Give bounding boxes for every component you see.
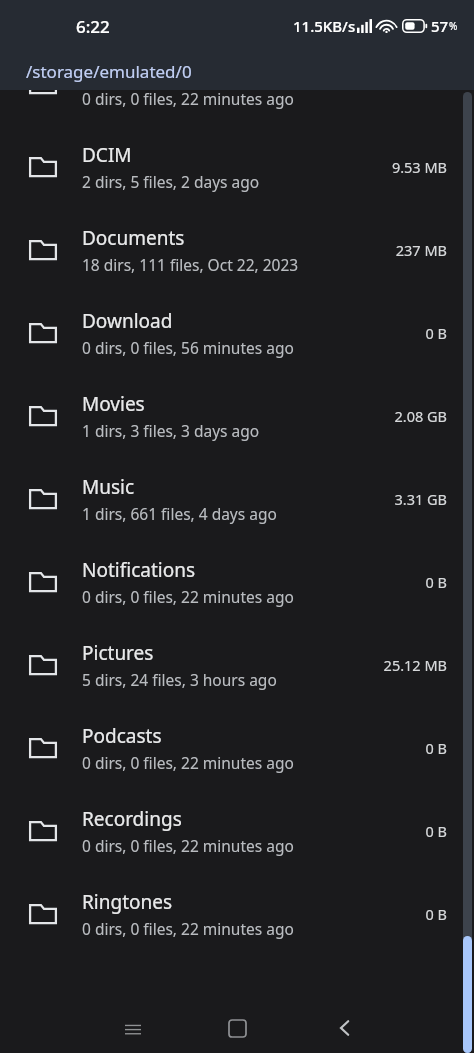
staticText: Documents: [82, 225, 185, 251]
button[interactable]: Notifications: [0, 540, 474, 623]
staticText: Podcasts: [82, 723, 162, 749]
staticText: Recordings: [82, 806, 182, 832]
button[interactable]: Music: [0, 457, 474, 540]
button[interactable]: DCIM: [0, 125, 474, 208]
button[interactable]: Movies: [0, 374, 474, 457]
staticText: Pictures: [82, 640, 154, 666]
staticText: 0 dirs, 0 files, 22 minutes ago: [82, 835, 294, 856]
staticText: 5 dirs, 24 files, 3 hours ago: [82, 669, 277, 690]
staticText: 2 dirs, 5 files, 2 days ago: [82, 171, 260, 192]
staticText: 0 dirs, 0 files, 22 minutes ago: [82, 752, 294, 773]
button[interactable]: Back: [328, 1011, 362, 1045]
button[interactable]: Recordings: [0, 789, 474, 872]
staticText: 0 dirs, 0 files, 22 minutes ago: [82, 88, 294, 109]
staticText: 0 B: [425, 904, 447, 924]
staticText: 11.5KB/s: [293, 16, 356, 36]
button[interactable]: Ringtones: [0, 872, 474, 955]
staticText: Audiobooks: [82, 59, 188, 85]
staticText: Download: [82, 308, 173, 334]
staticText: 0 B: [425, 323, 447, 343]
staticText: 0 dirs, 0 files, 22 minutes ago: [82, 586, 294, 607]
staticText: 2.08 GB: [394, 406, 447, 426]
staticText: Music: [82, 474, 135, 500]
staticText: 15 dirs, 0 files, 3 days ago: [82, 5, 268, 26]
staticText: Ringtones: [82, 889, 173, 915]
button[interactable]: Recents: [118, 1013, 148, 1043]
staticText: DCIM: [82, 142, 132, 168]
staticText: Notifications: [82, 557, 196, 583]
staticText: /storage/emulated/0: [26, 60, 192, 83]
staticText: 3.31 GB: [394, 489, 447, 509]
button[interactable]: Documents: [0, 208, 474, 291]
staticText: 18 dirs, 111 files, Oct 22, 2023: [82, 254, 299, 275]
button[interactable]: Podcasts: [0, 706, 474, 789]
staticText: 0 B: [425, 821, 447, 841]
staticText: 0 dirs, 0 files, 22 minutes ago: [82, 918, 294, 939]
staticText: Movies: [82, 391, 145, 417]
staticText: 0 B: [425, 74, 447, 94]
staticText: 1 dirs, 661 files, 4 days ago: [82, 503, 277, 524]
staticText: 9.53 MB: [391, 157, 447, 177]
staticText: 6:22: [76, 15, 110, 38]
staticText: 0 B: [425, 738, 447, 758]
staticText: 0 B: [425, 572, 447, 592]
button[interactable]: Pictures: [0, 623, 474, 706]
staticText: 237 MB: [395, 240, 447, 260]
staticText: 57: [431, 16, 449, 36]
staticText: 0 dirs, 0 files, 56 minutes ago: [82, 337, 294, 358]
staticText: %: [449, 19, 458, 33]
button[interactable]: /storage/emulated/0: [0, 52, 474, 90]
button[interactable]: Alarms: [0, 0, 474, 42]
staticText: 1 dirs, 3 files, 3 days ago: [82, 420, 260, 441]
button[interactable]: Audiobooks: [0, 42, 474, 125]
button[interactable]: Download: [0, 291, 474, 374]
button[interactable]: Home: [222, 1013, 252, 1043]
staticText: 25.12 MB: [383, 655, 447, 675]
